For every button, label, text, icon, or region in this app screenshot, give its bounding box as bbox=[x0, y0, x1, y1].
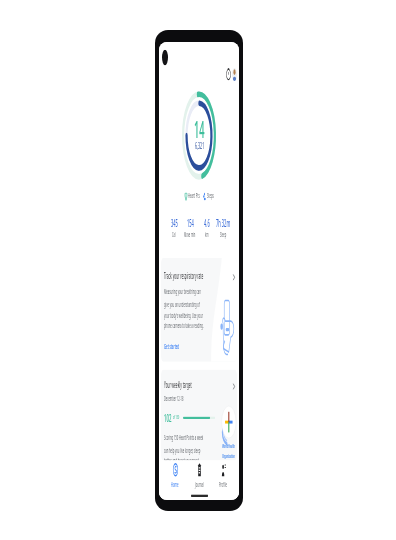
staticText: World Health Organization bbox=[222, 442, 235, 458]
staticText: Home bbox=[171, 479, 179, 489]
staticText: Heart Pts bbox=[188, 190, 200, 201]
staticText: 6,321 bbox=[195, 138, 205, 151]
button[interactable]: Your weekly target bbox=[161, 370, 237, 461]
button[interactable]: Timer bbox=[226, 68, 231, 81]
button[interactable]: Profile bbox=[232, 68, 237, 81]
staticText: Profile bbox=[219, 479, 227, 489]
staticText: Sleep bbox=[220, 229, 227, 237]
button[interactable]: Track your respiratory rate bbox=[161, 258, 237, 362]
staticText: Measuring your breathing can give you an… bbox=[164, 286, 204, 328]
staticText: of 150 bbox=[173, 414, 180, 422]
staticText: December 12-18 bbox=[164, 393, 184, 401]
staticText: Journal bbox=[195, 479, 204, 489]
button[interactable]: Profile bbox=[216, 461, 230, 492]
staticText: 4.6 bbox=[204, 216, 210, 229]
staticText: Scoring 150 Heart Points a week can help… bbox=[164, 432, 204, 461]
staticText: Steps bbox=[207, 190, 214, 201]
staticText: 7h 32m bbox=[216, 216, 231, 229]
staticText: Your weekly target bbox=[164, 380, 192, 390]
staticText: 102 bbox=[164, 409, 172, 424]
staticText: Move min bbox=[184, 229, 196, 237]
staticText: Cal bbox=[172, 229, 176, 237]
staticText: Get started bbox=[164, 341, 180, 351]
button[interactable]: Journal bbox=[192, 461, 207, 492]
staticText: Track your respiratory rate bbox=[164, 271, 204, 281]
staticText: km bbox=[205, 229, 209, 237]
button[interactable]: Home bbox=[168, 461, 182, 492]
staticText: 154 bbox=[187, 216, 194, 229]
staticText: 345 bbox=[171, 216, 178, 229]
staticText: 14 bbox=[194, 112, 205, 146]
